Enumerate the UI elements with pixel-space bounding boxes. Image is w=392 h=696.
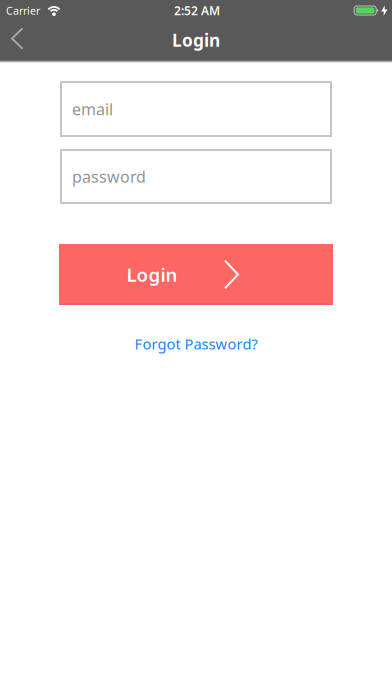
staticText: password (72, 166, 146, 187)
button[interactable]: email (60, 81, 332, 137)
staticText: Forgot Password? (134, 334, 257, 353)
staticText: Login (126, 262, 177, 287)
button[interactable]: Forgot Password? (134, 334, 257, 353)
staticText: email (72, 98, 113, 120)
staticText: 2:52 AM (174, 2, 220, 18)
button[interactable]: password (60, 149, 332, 204)
button[interactable] (0, 31, 30, 51)
staticText: Carrier (6, 3, 40, 18)
staticText: Login (172, 28, 220, 51)
button[interactable]: Login (59, 244, 333, 305)
